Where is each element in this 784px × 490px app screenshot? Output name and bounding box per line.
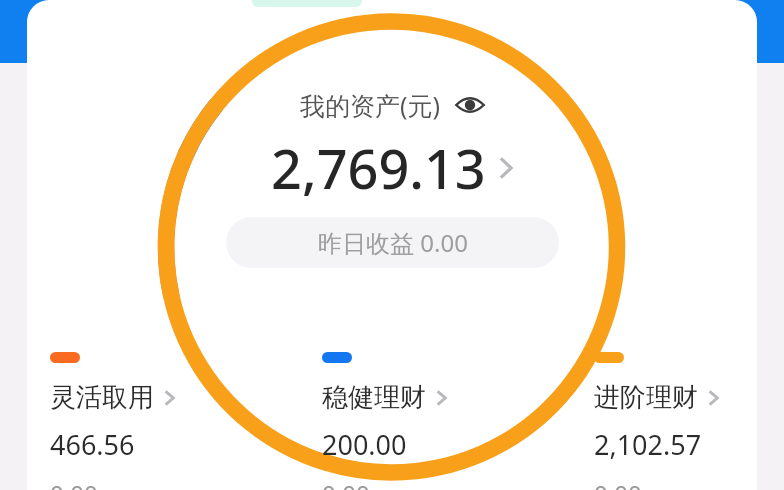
- button[interactable]: Toggle visibility: [455, 92, 485, 118]
- staticText: 灵活取用: [50, 381, 154, 414]
- button[interactable]: 昨日收益 0.00: [226, 217, 559, 268]
- staticText: 我的资产(元): [300, 88, 441, 122]
- staticText: 2,102.57: [594, 426, 702, 463]
- staticText: 0.00: [50, 477, 98, 490]
- staticText: 0.00: [322, 477, 370, 490]
- staticText: 200.00: [322, 426, 407, 463]
- button[interactable]: 稳健理财: [322, 348, 594, 490]
- button[interactable]: 我的资产(元): [300, 88, 485, 122]
- staticText: 0.00: [594, 477, 642, 490]
- button[interactable]: 2,769.13: [271, 131, 514, 205]
- staticText: 昨日收益 0.00: [318, 226, 468, 259]
- staticText: 稳健理财: [322, 381, 426, 414]
- button[interactable]: 进阶理财: [594, 348, 754, 490]
- staticText: 进阶理财: [594, 381, 698, 414]
- button[interactable]: 灵活取用: [50, 348, 322, 490]
- staticText: 466.56: [50, 426, 135, 463]
- staticText: 2,769.13: [271, 131, 486, 205]
